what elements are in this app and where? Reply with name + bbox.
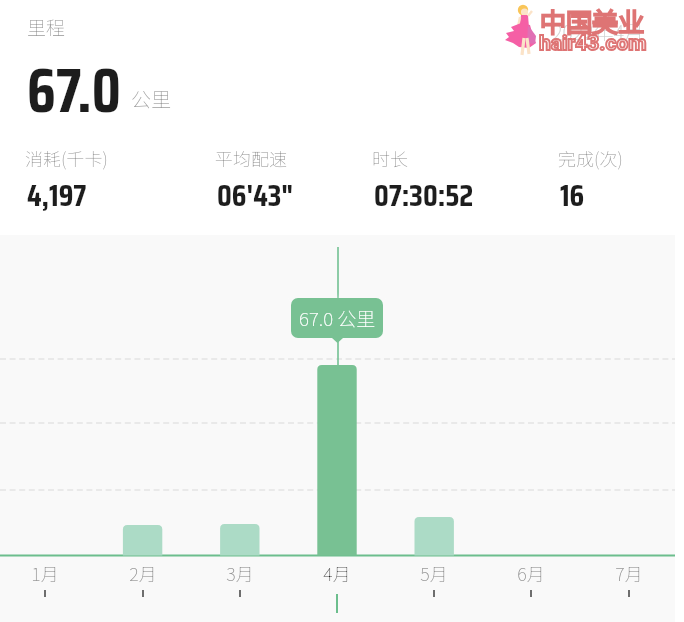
button[interactable]: 2月	[113, 560, 173, 622]
button[interactable]: 3月	[210, 560, 270, 622]
button[interactable]: 4月	[307, 560, 367, 622]
staticText: 时长	[372, 145, 408, 171]
button[interactable]: 时长	[372, 145, 502, 211]
staticText: 1月	[15, 560, 75, 586]
staticText: 4,197	[27, 171, 87, 220]
button[interactable]: 完成(次)	[558, 145, 684, 211]
button[interactable]: 6月	[501, 560, 561, 622]
staticText: 消耗(千卡)	[25, 145, 108, 171]
button[interactable]: 7月	[599, 560, 659, 622]
staticText: 07:30:52	[374, 171, 474, 220]
staticText: 公里	[131, 84, 171, 113]
staticText: 67.0	[27, 43, 121, 139]
staticText: 4月	[307, 560, 367, 586]
button[interactable]: 5月	[404, 560, 464, 622]
button[interactable]: 1月	[15, 560, 75, 622]
staticText: 5月	[404, 560, 464, 586]
staticText: hair43.com	[539, 31, 647, 56]
staticText: 06'43"	[217, 171, 294, 220]
button[interactable]: 平均配速	[215, 145, 345, 211]
staticText: 7月	[599, 560, 659, 586]
staticText: 里程	[27, 13, 66, 41]
staticText: 2022年4月	[552, 17, 645, 46]
staticText: 平均配速	[215, 145, 287, 171]
staticText: 3月	[210, 560, 270, 586]
button[interactable]: 消耗(千卡)	[25, 145, 155, 211]
staticText: 中国美业	[540, 2, 645, 40]
button[interactable]: 67.0 公里	[291, 298, 383, 343]
staticText: 16	[560, 171, 585, 220]
staticText: 6月	[501, 560, 561, 586]
staticText: hair43.com	[539, 31, 647, 56]
staticText: 2月	[113, 560, 173, 586]
staticText: 完成(次)	[558, 145, 623, 171]
staticText: 67.0 公里	[299, 304, 376, 332]
staticText: 中国美业	[540, 2, 645, 40]
